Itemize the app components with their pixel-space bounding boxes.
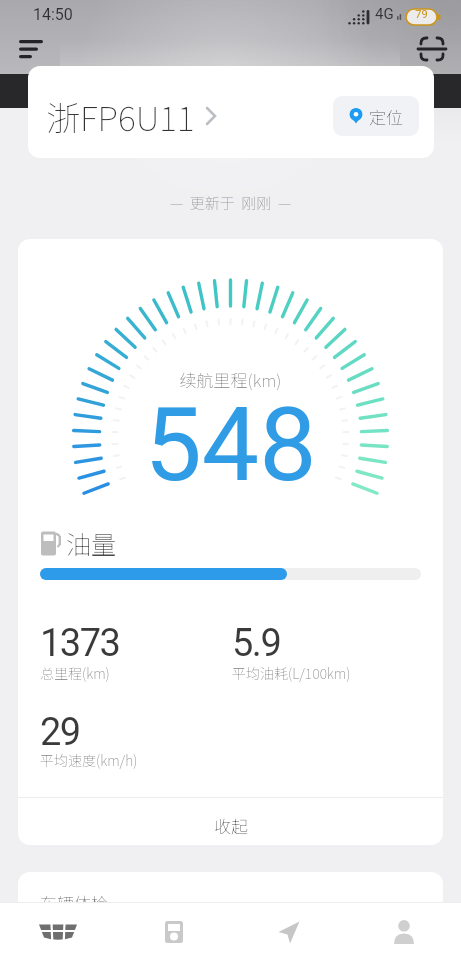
staticText: 油量	[66, 525, 117, 561]
staticText: 5.9	[232, 621, 281, 666]
staticText: 浙FP6U11	[46, 92, 195, 141]
button[interactable]: 浙FP6U11	[28, 66, 434, 158]
staticText: 续航里程(km)	[18, 367, 443, 392]
staticText: 1373	[40, 621, 120, 666]
button[interactable]	[231, 903, 346, 960]
staticText: 79	[405, 8, 438, 21]
button[interactable]: 定位	[333, 96, 419, 136]
button[interactable]	[414, 33, 450, 65]
staticText: 29	[40, 710, 80, 755]
button[interactable]	[346, 903, 461, 960]
staticText: 车辆体检	[40, 890, 108, 915]
staticText: 定位	[369, 104, 403, 129]
staticText: 14:50	[33, 5, 73, 24]
staticText: — 更新于 刚刚 —	[0, 192, 461, 214]
button[interactable]	[116, 903, 231, 960]
staticText: 548	[18, 385, 443, 505]
staticText: 平均油耗(L/100km)	[232, 663, 351, 683]
button[interactable]	[0, 903, 116, 960]
staticText: 总里程(km)	[40, 663, 110, 683]
staticText: 4G	[375, 5, 394, 23]
button[interactable]: 收起	[18, 802, 443, 845]
staticText: 收起	[214, 813, 248, 838]
staticText: 平均速度(km/h)	[40, 750, 138, 770]
button[interactable]	[10, 32, 54, 66]
